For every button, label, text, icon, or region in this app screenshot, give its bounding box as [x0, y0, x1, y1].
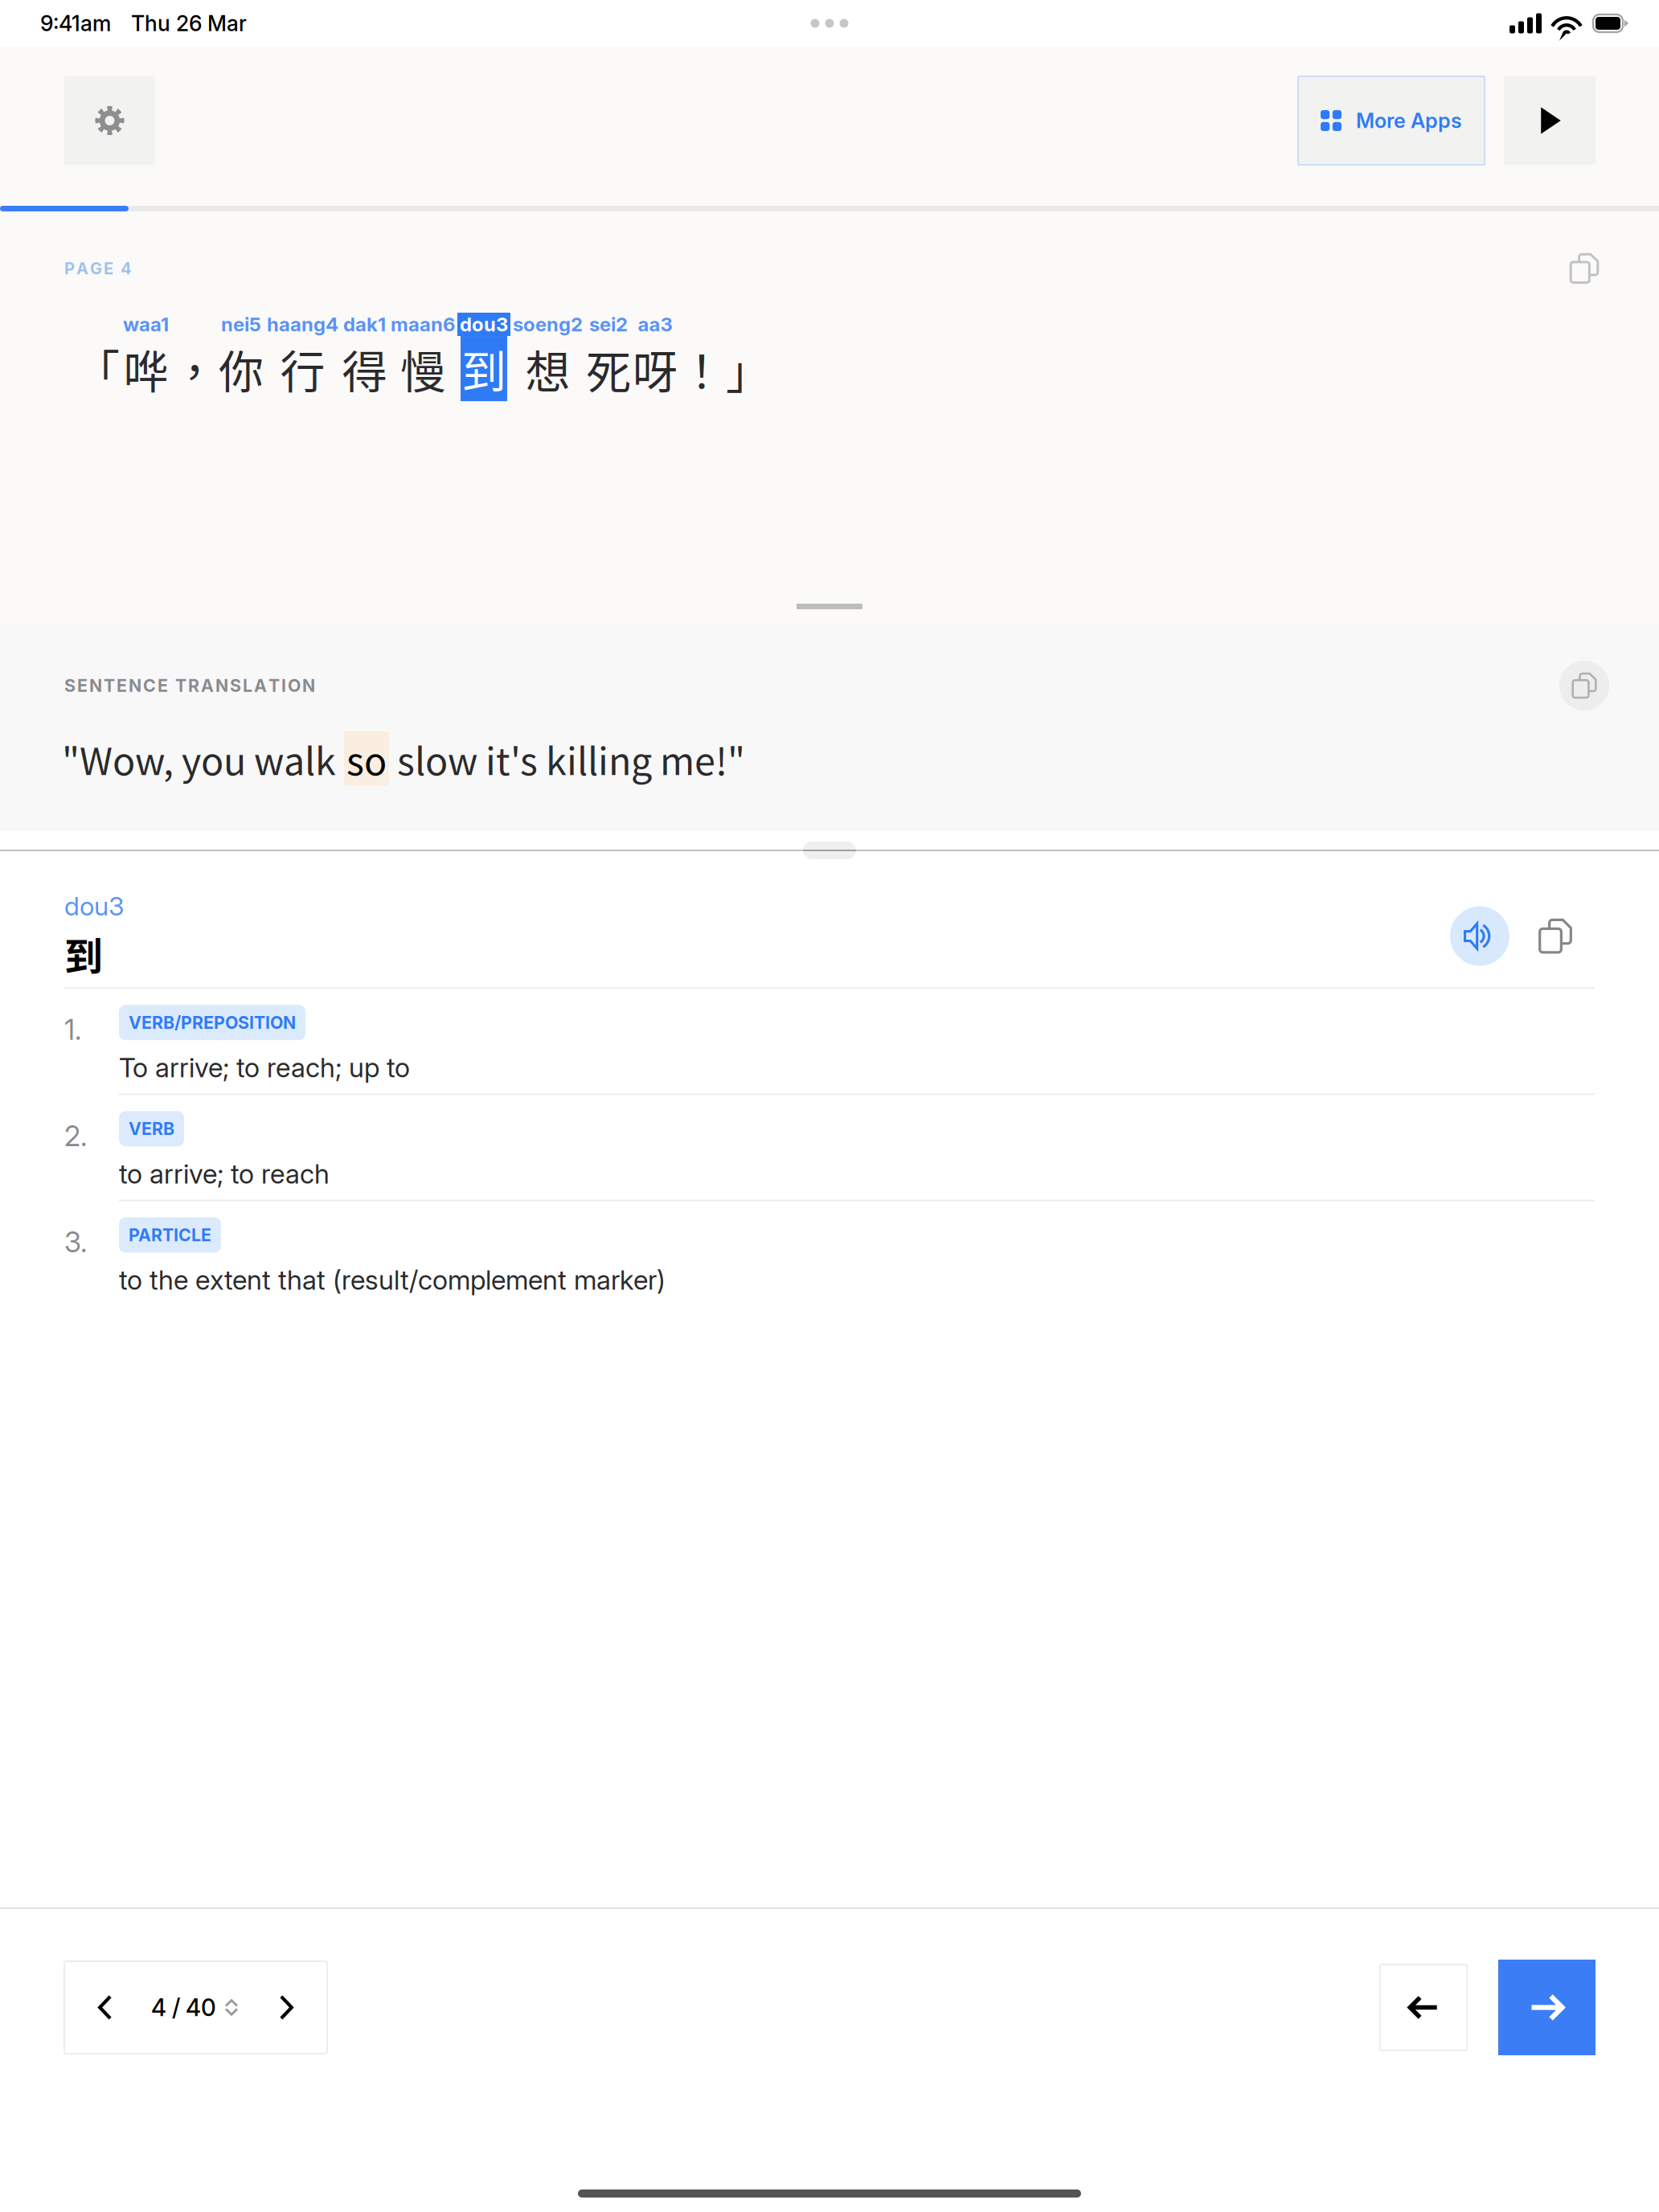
staticText: aa3	[638, 313, 672, 336]
button[interactable]: Previous	[1380, 1964, 1467, 2050]
staticText: so	[346, 731, 387, 786]
staticText: to the extent that (result/complement ma…	[119, 1264, 666, 1296]
staticText: 」	[726, 336, 771, 401]
button[interactable]: Copy word	[1530, 911, 1580, 961]
staticText: nei5	[221, 313, 261, 336]
staticText: VERB/PREPOSITION	[129, 1012, 296, 1033]
staticText: 到	[64, 926, 103, 982]
staticText: 「	[75, 336, 120, 401]
button[interactable]: Settings	[64, 76, 155, 165]
staticText: ，	[172, 336, 217, 401]
staticText: 行	[280, 336, 325, 401]
staticText: 呀	[633, 336, 678, 401]
staticText: haang4	[267, 313, 338, 336]
button[interactable]: 4 / 40	[64, 1961, 327, 2054]
staticText: P A G E 4	[64, 259, 132, 278]
staticText: ！	[679, 336, 724, 401]
staticText: 3.	[64, 1225, 87, 1259]
button[interactable]: Next	[1498, 1960, 1596, 2055]
staticText: Thu 26 Mar	[131, 10, 247, 36]
staticText: to arrive; to reach	[119, 1158, 330, 1190]
staticText: 9:41am	[40, 10, 111, 36]
button[interactable]: Play	[1504, 76, 1596, 165]
staticText: PARTICLE	[129, 1225, 211, 1245]
staticText: 死	[586, 336, 631, 401]
staticText: 2.	[64, 1119, 87, 1153]
staticText: dou3	[460, 313, 508, 336]
staticText: dak1	[343, 313, 386, 336]
staticText: 慢	[400, 336, 445, 401]
staticText: VERB	[129, 1118, 174, 1139]
button[interactable]: Play pronunciation	[1450, 906, 1509, 966]
staticText: "Wow, you walk	[62, 731, 344, 786]
staticText: 哗	[123, 336, 168, 401]
staticText: 得	[342, 336, 387, 401]
button[interactable]: More Apps	[1298, 76, 1485, 165]
button[interactable]: Copy sentence	[1559, 244, 1609, 293]
staticText: To arrive; to reach; up to	[119, 1051, 410, 1084]
staticText: 想	[525, 336, 570, 401]
button[interactable]: Copy translation	[1559, 661, 1609, 711]
staticText: soeng2	[513, 313, 583, 336]
staticText: sei2	[589, 313, 628, 336]
staticText: 到	[461, 336, 506, 401]
staticText: More Apps	[1356, 108, 1462, 133]
staticText: slow it's killing me!"	[389, 731, 745, 786]
staticText: 1.	[64, 1013, 81, 1047]
staticText: waa1	[123, 313, 169, 336]
staticText: maan6	[391, 313, 455, 336]
staticText: dou3	[64, 891, 124, 922]
staticText: 4 / 40	[151, 1993, 216, 2022]
staticText: 你	[219, 336, 264, 401]
staticText: S E N T E N C E T R A N S L A T I O N	[64, 675, 315, 696]
